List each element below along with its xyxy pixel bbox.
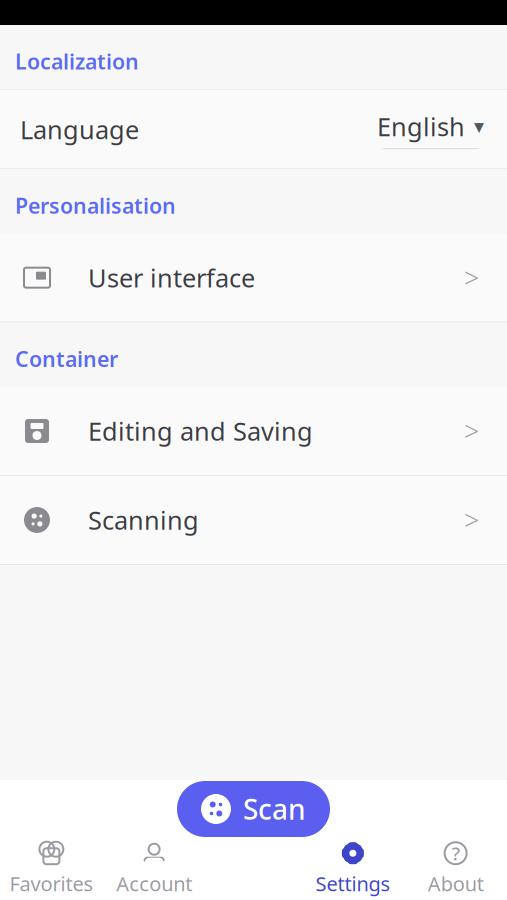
staticText: Editing and Saving: [88, 414, 313, 448]
staticText: Scanning: [88, 503, 199, 537]
staticText: ?: [452, 841, 460, 866]
staticText: User interface: [88, 261, 255, 294]
staticText: About: [428, 870, 484, 897]
staticText: Scan: [243, 790, 306, 828]
staticText: Language: [20, 112, 139, 146]
staticText: Localization: [15, 47, 139, 75]
button[interactable]: Scanning: [0, 476, 507, 564]
staticText: >: [464, 502, 479, 538]
staticText: Personalisation: [15, 191, 176, 220]
staticText: >: [464, 260, 479, 295]
button[interactable]: Favorites: [0, 838, 103, 900]
button[interactable]: Editing and Saving: [0, 387, 507, 475]
staticText: >: [464, 413, 479, 449]
staticText: ▾: [474, 115, 484, 138]
staticText: Container: [15, 345, 118, 373]
button[interactable]: Account: [103, 838, 206, 900]
staticText: English: [377, 109, 465, 143]
button[interactable]: Scan: [177, 781, 330, 837]
staticText: Settings: [315, 870, 390, 897]
button[interactable]: Language: [0, 90, 507, 168]
staticText: Favorites: [9, 870, 93, 897]
button[interactable]: ?: [404, 838, 507, 900]
button[interactable]: Settings: [301, 838, 404, 900]
staticText: Account: [116, 870, 192, 897]
button[interactable]: User interface: [0, 234, 507, 322]
